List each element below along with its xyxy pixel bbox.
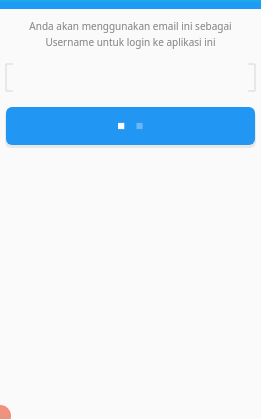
button[interactable]: Lanjut: [6, 107, 255, 145]
staticText: Username untuk login ke aplikasi ini: [0, 35, 261, 49]
staticText: Anda akan menggunakan email ini sebagai: [0, 19, 261, 33]
